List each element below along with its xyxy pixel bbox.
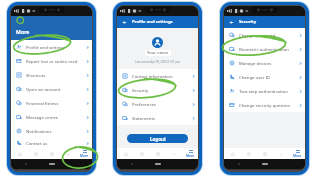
button[interactable]: Back — [228, 19, 235, 26]
button[interactable]: Two-step authentication — [224, 84, 305, 98]
staticText: Profile and settings — [132, 19, 173, 25]
button[interactable]: Invest — [60, 148, 76, 159]
button[interactable]: Biometric authentication — [224, 42, 305, 56]
staticText: Change password — [239, 32, 276, 38]
staticText: Manage devices — [239, 60, 272, 66]
button[interactable]: Financial fitness — [11, 96, 92, 110]
button[interactable]: Move money — [44, 148, 60, 159]
button[interactable]: Preferences — [117, 97, 198, 111]
button[interactable]: Statements — [117, 111, 198, 125]
staticText: Logout — [150, 136, 166, 142]
button[interactable]: Back — [121, 19, 128, 26]
button[interactable]: Profile and settings — [11, 40, 92, 54]
button[interactable]: Move money — [257, 148, 273, 159]
staticText: Security — [239, 19, 257, 25]
staticText: Contact information — [132, 73, 173, 79]
staticText: Change user ID — [239, 74, 271, 80]
staticText: Biometric authentication — [239, 46, 289, 52]
staticText: Preferences — [132, 101, 156, 107]
button[interactable]: Accounts — [241, 148, 257, 159]
staticText: Message centre — [26, 114, 58, 120]
staticText: Financial fitness — [26, 100, 59, 106]
staticText: Report lost or stolen card — [26, 58, 78, 64]
button[interactable]: More — [182, 148, 198, 159]
staticText: Contact us — [26, 140, 48, 146]
button[interactable]: Invest — [166, 148, 182, 159]
staticText: Statements — [132, 115, 156, 121]
button[interactable]: Open an account — [11, 82, 92, 96]
staticText: More — [80, 154, 89, 158]
button[interactable]: Change security question — [224, 98, 305, 112]
button[interactable]: Report lost or stolen card — [11, 54, 92, 68]
button[interactable]: Contact information — [117, 69, 198, 83]
button[interactable]: Security — [117, 83, 198, 97]
button[interactable]: Logout — [127, 134, 188, 143]
button[interactable]: Contact us — [11, 138, 92, 148]
button[interactable]: Notifications — [11, 124, 92, 138]
staticText: Security — [132, 87, 149, 93]
button[interactable]: Accounts — [134, 148, 150, 159]
staticText: Notifications — [26, 128, 52, 134]
staticText: Two-step authentication — [239, 88, 288, 94]
staticText: Open an account — [26, 86, 61, 92]
staticText: Change security question — [239, 102, 291, 108]
button[interactable]: Change password — [224, 28, 305, 42]
button[interactable]: Shortcuts — [11, 68, 92, 82]
button[interactable]: Home — [117, 148, 134, 159]
button[interactable]: Invest — [273, 148, 289, 159]
staticText: Profile and settings — [26, 44, 65, 50]
staticText: Shortcuts — [26, 72, 46, 78]
staticText: More — [16, 28, 30, 35]
button[interactable]: Home — [11, 148, 28, 159]
staticText: More — [293, 154, 302, 158]
button[interactable]: Message centre — [11, 110, 92, 124]
staticText: Last access Apr 08, 2020 01:01 pm — [135, 60, 180, 64]
staticText: Your name — [147, 50, 169, 56]
button[interactable]: Accounts — [28, 148, 44, 159]
staticText: More — [186, 154, 195, 158]
button[interactable]: More — [76, 148, 92, 159]
button[interactable]: Manage devices — [224, 56, 305, 70]
button[interactable]: More — [289, 148, 305, 159]
button[interactable]: Move money — [150, 148, 166, 159]
button[interactable]: Change user ID — [224, 70, 305, 84]
button[interactable]: Home — [224, 148, 241, 159]
